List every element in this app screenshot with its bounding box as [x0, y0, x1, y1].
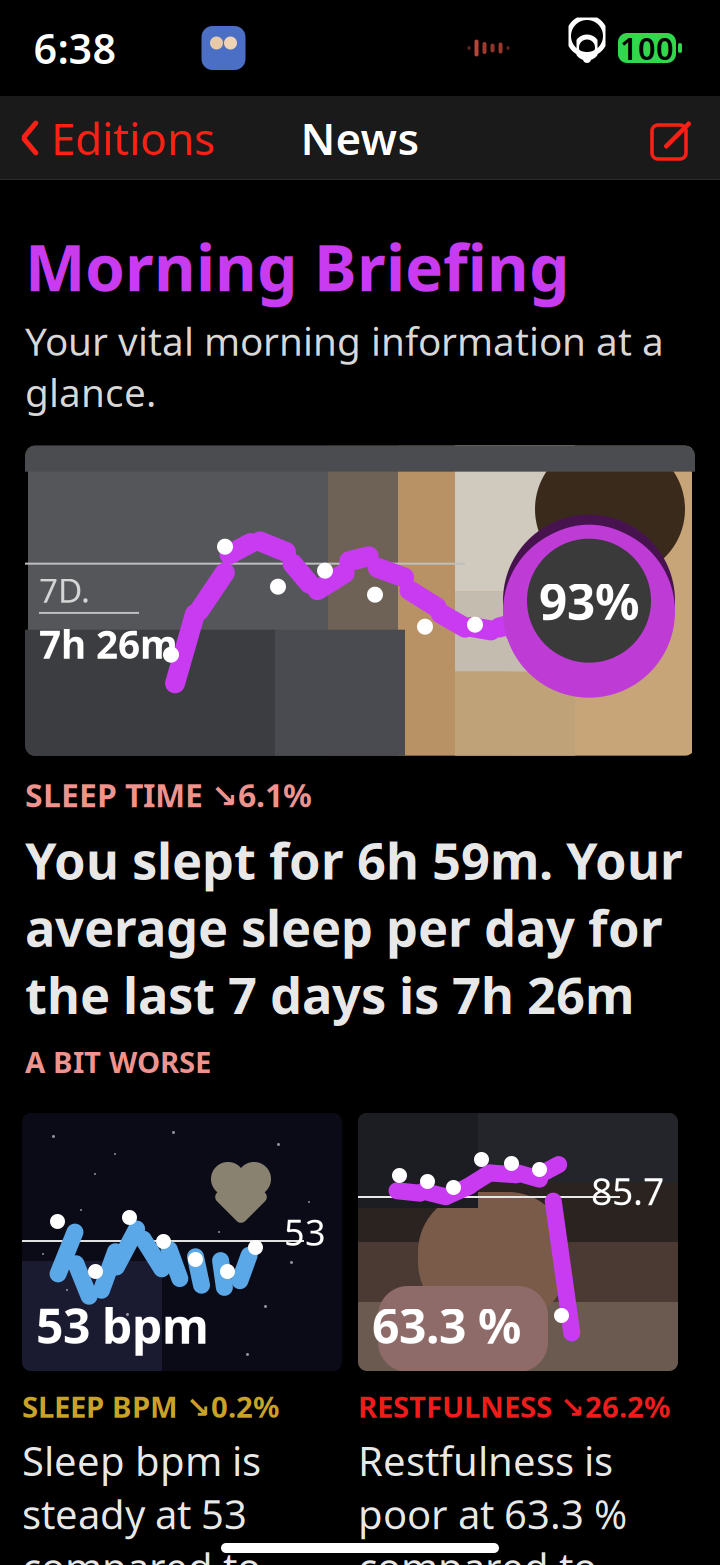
staticText: 7D. — [39, 568, 90, 612]
staticText: 6:38 — [33, 21, 116, 75]
staticText: SLEEP TIME ↘6.1% — [25, 774, 312, 816]
button[interactable]: 85.7 — [358, 1113, 678, 1565]
staticText: RESTFULNESS ↘26.2% — [358, 1387, 670, 1426]
button[interactable]: Editions — [0, 99, 215, 177]
staticText: 63.3 % — [372, 1293, 521, 1357]
staticText: 100 — [620, 28, 674, 68]
staticText: Morning Briefing — [25, 224, 569, 309]
button[interactable]: 7D. — [25, 446, 695, 1081]
staticText: 7h 26m — [39, 618, 178, 669]
staticText: Sleep bpm is steady at 53 compared to yo… — [22, 1434, 288, 1565]
staticText: 93% — [539, 568, 639, 633]
staticText: News — [300, 109, 419, 167]
staticText: SLEEP BPM ↘0.2% — [22, 1387, 279, 1426]
staticText: You slept for 6h 59m. Your average sleep… — [25, 826, 683, 1028]
button[interactable]: 53 — [22, 1113, 342, 1565]
staticText: Restfulness is poor at 63.3 % compared t… — [358, 1434, 647, 1565]
staticText: 85.7 — [591, 1166, 664, 1216]
staticText: 53 — [284, 1208, 326, 1256]
button[interactable]: Compose — [650, 105, 720, 171]
staticText: Editions — [51, 109, 215, 167]
staticText: A BIT WORSE — [25, 1042, 211, 1081]
staticText: Your vital morning information at a glan… — [25, 315, 664, 418]
staticText: 53 bpm — [36, 1293, 209, 1357]
